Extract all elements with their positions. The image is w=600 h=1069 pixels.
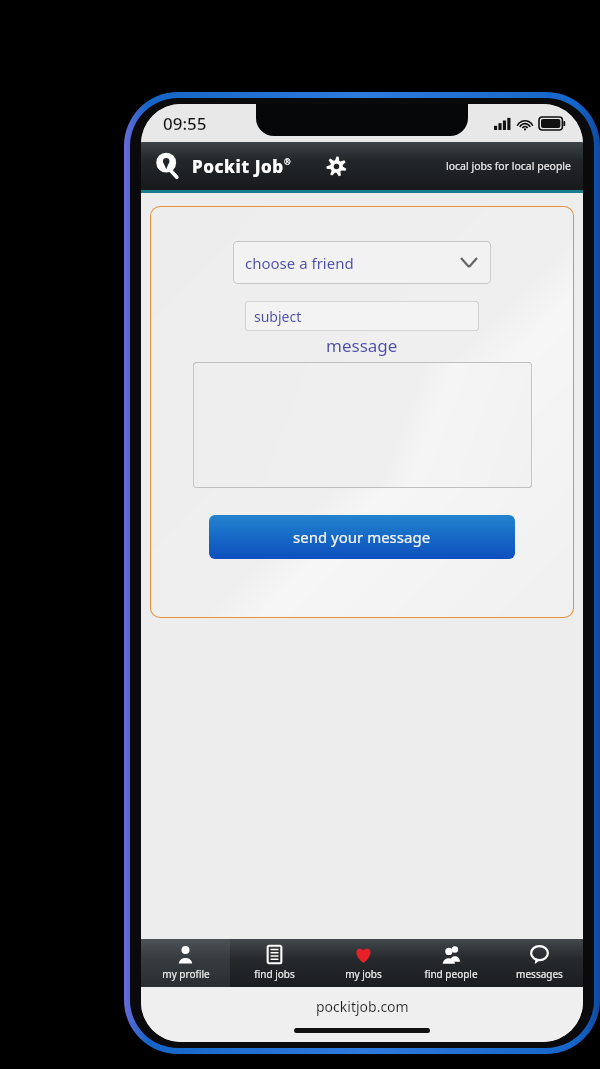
staticText: my jobs: [345, 967, 382, 981]
staticText: find jobs: [254, 967, 295, 981]
button[interactable]: Pockit Job: [155, 152, 291, 180]
staticText: subject: [254, 307, 302, 326]
button[interactable]: subject: [245, 301, 479, 331]
button[interactable]: Settings: [321, 151, 351, 181]
staticText: send your message: [293, 527, 431, 547]
button[interactable]: find people: [407, 939, 495, 987]
staticText: find people: [424, 967, 478, 981]
staticText: choose a friend: [245, 253, 354, 273]
staticText: local jobs for local people: [446, 159, 571, 173]
button[interactable]: send your message: [209, 515, 515, 559]
button[interactable]: messages: [495, 939, 583, 987]
button[interactable]: choose a friend: [233, 241, 491, 284]
staticText: ®: [284, 156, 291, 167]
staticText: message: [326, 334, 398, 357]
staticText: 09:55: [163, 112, 207, 135]
button[interactable]: find jobs: [230, 939, 319, 987]
button[interactable]: [193, 362, 532, 488]
staticText: pockitjob.com: [316, 997, 409, 1016]
button[interactable]: my jobs: [319, 939, 407, 987]
staticText: my profile: [162, 967, 210, 981]
button[interactable]: my profile: [141, 939, 230, 987]
staticText: messages: [516, 967, 563, 981]
staticText: Pockit Job: [192, 155, 284, 178]
